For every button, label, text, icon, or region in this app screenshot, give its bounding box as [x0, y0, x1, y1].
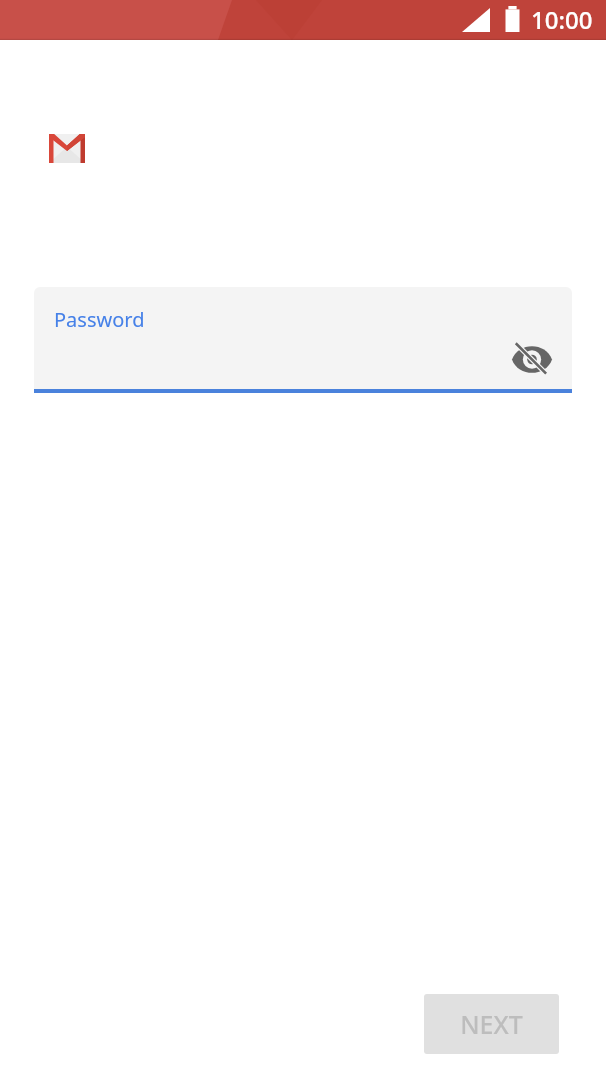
button[interactable]: NEXT: [424, 994, 559, 1054]
staticText: Password: [54, 306, 145, 333]
button[interactable]: Show password: [508, 335, 556, 383]
staticText: NEXT: [460, 1007, 523, 1041]
button[interactable]: Password: [34, 287, 572, 389]
staticText: 10:00: [531, 3, 593, 36]
